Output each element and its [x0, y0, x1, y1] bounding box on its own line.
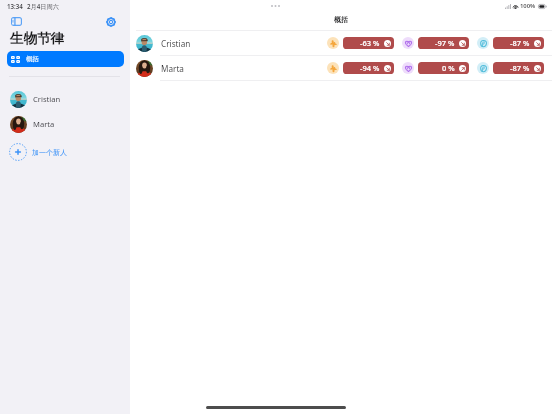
staticText: Marta: [161, 63, 184, 74]
staticText: Marta: [33, 119, 55, 129]
staticText: 100%: [520, 2, 536, 10]
button[interactable]: Cristian: [6, 87, 96, 111]
staticText: 13:34: [7, 2, 23, 10]
button[interactable]: 概括: [7, 51, 124, 67]
staticText: 生物节律: [10, 30, 64, 47]
button[interactable]: Marta: [6, 112, 96, 136]
button[interactable]: 加一个新人: [5, 140, 87, 164]
staticText: Cristian: [33, 94, 61, 104]
button[interactable]: Settings: [101, 12, 120, 31]
staticText: -63 %: [360, 38, 380, 48]
staticText: 0 %: [442, 63, 455, 73]
staticText: 2月4日周六: [27, 2, 59, 10]
button[interactable]: Cristian: [130, 31, 552, 55]
staticText: -87 %: [510, 38, 530, 48]
button[interactable]: Marta: [130, 56, 552, 80]
staticText: 概括: [26, 55, 39, 63]
staticText: -87 %: [510, 63, 530, 73]
button[interactable]: Toggle sidebar: [7, 12, 26, 31]
staticText: Cristian: [161, 38, 191, 49]
staticText: 加一个新人: [32, 148, 67, 157]
staticText: -94 %: [360, 63, 380, 73]
staticText: -97 %: [435, 38, 455, 48]
staticText: 概括: [334, 15, 348, 24]
